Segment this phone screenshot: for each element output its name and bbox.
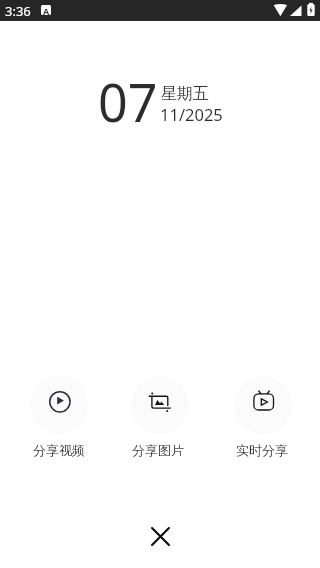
button[interactable]: 分享图片 [125,374,195,458]
button[interactable]: 实时分享 [228,374,298,458]
staticText: A [43,5,50,15]
staticText: 07 [98,66,158,137]
staticText: 分享图片 [132,442,184,458]
staticText: 3:36 [5,2,31,20]
staticText: 分享视频 [33,442,85,458]
staticText: 星期五 [161,84,209,104]
button[interactable]: Close [140,516,180,556]
staticText: 11/2025 [160,103,223,125]
staticText: 实时分享 [236,442,288,458]
button[interactable]: 分享视频 [24,374,94,458]
